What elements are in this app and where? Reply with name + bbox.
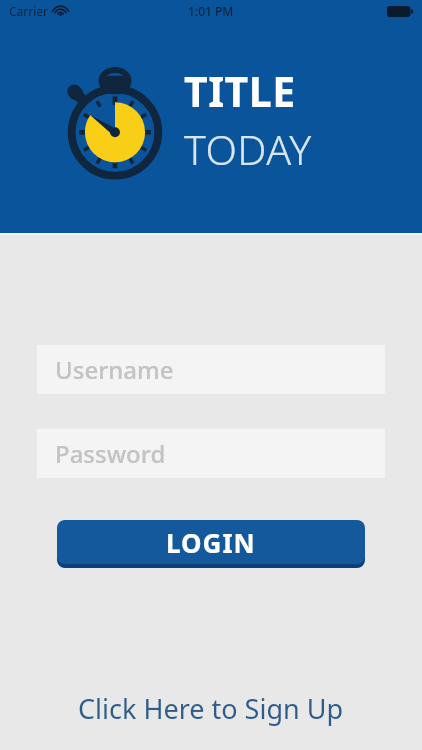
staticText: Carrier xyxy=(9,3,49,19)
button[interactable]: Username xyxy=(37,345,385,394)
button[interactable]: LOGIN xyxy=(57,520,365,564)
staticText: LOGIN xyxy=(166,525,256,560)
staticText: Click Here to Sign Up xyxy=(78,690,344,727)
staticText: Username xyxy=(55,353,174,386)
button[interactable]: Click Here to Sign Up xyxy=(0,678,422,739)
staticText: 1:01 PM xyxy=(188,3,234,19)
staticText: Password xyxy=(55,437,166,470)
staticText: TODAY xyxy=(184,121,312,177)
button[interactable]: Password xyxy=(37,429,385,478)
staticText: TITLE xyxy=(184,63,296,119)
other: Title Today stopwatch logo xyxy=(56,64,174,176)
